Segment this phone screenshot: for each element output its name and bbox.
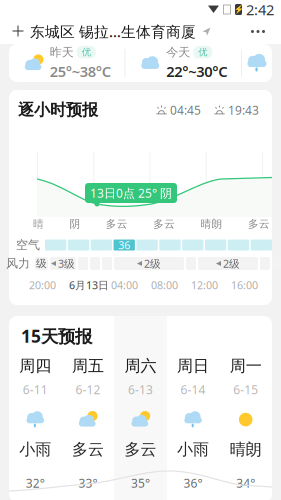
- staticText: 级: [36, 257, 47, 270]
- staticText: 08:00: [151, 278, 178, 292]
- staticText: 04:45: [170, 102, 201, 118]
- staticText: 15天预报: [21, 324, 92, 347]
- staticText: 周日: [177, 356, 209, 376]
- staticText: 35°: [131, 475, 150, 491]
- staticText: 6-11: [23, 382, 48, 398]
- button[interactable]: 周一: [219, 356, 272, 500]
- staticText: 20:00: [29, 278, 56, 292]
- staticText: 12:00: [191, 278, 218, 292]
- button[interactable]: Add city: [9, 19, 27, 43]
- staticText: 33°: [78, 475, 97, 491]
- staticText: 晴朗: [201, 217, 223, 230]
- staticText: 3级: [58, 256, 75, 271]
- staticText: 2:42: [246, 0, 274, 19]
- staticText: 晴朗: [230, 440, 262, 459]
- staticText: 16:00: [231, 278, 258, 292]
- staticText: 2级: [144, 256, 161, 271]
- button[interactable]: 周日: [167, 356, 219, 500]
- button[interactable]: 周六: [114, 356, 167, 500]
- staticText: 36: [118, 238, 130, 252]
- staticText: 阴: [69, 217, 80, 230]
- staticText: 空气: [16, 238, 40, 252]
- staticText: 6月13日: [69, 278, 109, 292]
- staticText: 多云: [72, 440, 104, 459]
- button[interactable]: 周四: [9, 356, 62, 500]
- button[interactable]: More options: [243, 19, 273, 44]
- staticText: 36°: [184, 475, 203, 491]
- staticText: 周五: [72, 356, 104, 376]
- staticText: 今天: [166, 45, 190, 60]
- button[interactable]: 周五: [62, 356, 114, 500]
- staticText: 小雨: [177, 440, 209, 459]
- staticText: 风力: [6, 256, 30, 271]
- staticText: 小雨: [19, 440, 51, 459]
- staticText: 优: [82, 46, 91, 58]
- staticText: 25°~38°C: [50, 62, 111, 81]
- staticText: ⚡: [233, 5, 243, 14]
- staticText: 逐小时预报: [18, 100, 98, 120]
- staticText: 22°~30°C: [166, 62, 227, 81]
- staticText: 6-15: [233, 382, 258, 398]
- staticText: 6-13: [128, 382, 153, 398]
- staticText: 04:00: [111, 278, 138, 292]
- staticText: 晴: [33, 217, 44, 230]
- staticText: 34°: [236, 475, 255, 491]
- staticText: 2级: [223, 256, 240, 271]
- staticText: 东城区 锡拉…生体育商厦: [30, 22, 196, 41]
- staticText: 13日0点 25° 阴: [90, 185, 172, 201]
- staticText: 优: [198, 46, 207, 58]
- staticText: 周六: [124, 356, 156, 376]
- staticText: 多云: [153, 217, 175, 230]
- staticText: 周一: [230, 356, 262, 376]
- staticText: 6-12: [75, 382, 100, 398]
- staticText: 19:43: [228, 102, 259, 118]
- staticText: 周四: [19, 356, 51, 376]
- staticText: 昨天: [50, 45, 74, 60]
- staticText: 多云: [248, 217, 270, 230]
- staticText: 多云: [106, 217, 128, 230]
- staticText: 多云: [124, 440, 156, 459]
- staticText: 6-14: [181, 382, 206, 398]
- staticText: 32°: [26, 475, 45, 491]
